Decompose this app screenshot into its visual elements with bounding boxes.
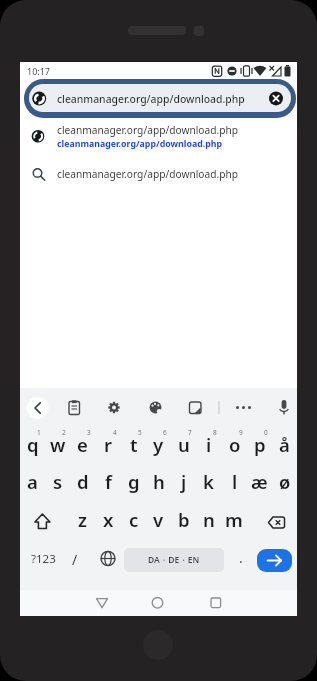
button[interactable]: ?123 — [23, 546, 63, 572]
button[interactable]: r — [96, 431, 121, 457]
button[interactable]: s — [45, 468, 70, 494]
button[interactable] — [271, 395, 297, 421]
staticText: j — [181, 469, 187, 494]
button[interactable] — [90, 592, 114, 616]
staticText: y — [153, 432, 164, 457]
staticText: æ — [251, 469, 268, 494]
button[interactable]: a — [20, 468, 45, 494]
staticText: 0 — [264, 428, 268, 437]
button[interactable]: ø — [272, 468, 297, 494]
button[interactable]: m — [221, 506, 246, 532]
staticText: v — [153, 507, 164, 532]
staticText: ?123 — [31, 551, 56, 567]
button[interactable]: o — [222, 431, 247, 457]
button[interactable] — [182, 395, 208, 421]
button[interactable]: DA・DE・EN — [124, 548, 224, 572]
staticText: n — [203, 507, 215, 532]
staticText: k — [203, 469, 214, 494]
staticText: g — [128, 469, 140, 494]
button[interactable]: b — [171, 506, 196, 532]
staticText: o — [229, 432, 241, 457]
staticText: r — [104, 432, 113, 457]
staticText: DA・DE・EN — [148, 554, 200, 566]
button[interactable]: i — [196, 431, 221, 457]
button[interactable]: e — [70, 431, 95, 457]
button[interactable] — [101, 395, 127, 421]
staticText: . — [239, 548, 243, 567]
button[interactable] — [24, 79, 296, 118]
button[interactable]: n — [196, 506, 221, 532]
staticText: 10:17 — [27, 65, 51, 77]
button[interactable]: . — [232, 544, 250, 570]
button[interactable]: / — [64, 546, 86, 572]
staticText: 5 — [138, 428, 142, 437]
staticText: ø — [279, 469, 291, 494]
staticText: b — [178, 507, 190, 532]
button[interactable] — [25, 395, 51, 421]
button[interactable] — [257, 549, 292, 572]
staticText: w — [50, 432, 66, 457]
staticText: t — [130, 432, 138, 457]
staticText: 8 — [213, 428, 217, 437]
staticText: c — [129, 507, 139, 532]
staticText: a — [27, 469, 38, 494]
button[interactable]: v — [146, 506, 171, 532]
button[interactable]: p — [247, 431, 272, 457]
button[interactable]: q — [20, 431, 45, 457]
staticText: 2 — [62, 428, 66, 437]
staticText: 3 — [87, 428, 91, 437]
button[interactable]: å — [272, 431, 297, 457]
button[interactable] — [20, 160, 297, 186]
button[interactable] — [61, 395, 87, 421]
staticText: 4 — [113, 428, 117, 437]
staticText: cleanmanager.org/app/download.php — [57, 167, 239, 181]
button[interactable]: æ — [247, 468, 272, 494]
staticText: / — [72, 550, 78, 569]
button[interactable]: f — [96, 468, 121, 494]
button[interactable]: x — [96, 506, 121, 532]
button[interactable]: d — [70, 468, 95, 494]
staticText: d — [77, 469, 89, 494]
staticText: h — [153, 469, 165, 494]
staticText: cleanmanager.org/app/download.php — [57, 138, 223, 150]
button[interactable] — [231, 395, 257, 421]
button[interactable]: w — [45, 431, 70, 457]
button[interactable] — [20, 119, 297, 152]
button[interactable]: l — [222, 468, 247, 494]
button[interactable]: t — [121, 431, 146, 457]
staticText: e — [77, 432, 88, 457]
button[interactable]: k — [196, 468, 221, 494]
staticText: 1 — [37, 428, 41, 437]
button[interactable]: y — [146, 431, 171, 457]
button[interactable] — [143, 395, 169, 421]
staticText: x — [103, 507, 114, 532]
button[interactable]: g — [121, 468, 146, 494]
staticText: i — [206, 432, 212, 457]
staticText: 6 — [163, 428, 167, 437]
staticText: cleanmanager.org/app/download.php — [57, 123, 239, 137]
staticText: q — [27, 432, 39, 457]
button[interactable]: h — [146, 468, 171, 494]
staticText: f — [105, 469, 112, 494]
button[interactable]: j — [171, 468, 196, 494]
staticText: u — [178, 432, 190, 457]
button[interactable] — [145, 592, 169, 616]
staticText: m — [225, 507, 243, 532]
button[interactable] — [204, 592, 228, 616]
button[interactable]: c — [121, 506, 146, 532]
staticText: p — [254, 432, 266, 457]
staticText: s — [53, 469, 63, 494]
staticText: 7 — [188, 428, 192, 437]
staticText: 9 — [239, 428, 243, 437]
staticText: cleanmanager.org/app/download.php — [57, 92, 245, 106]
staticText: å — [279, 432, 290, 457]
staticText: z — [78, 507, 87, 532]
button[interactable]: u — [171, 431, 196, 457]
staticText: l — [232, 469, 238, 494]
button[interactable]: z — [70, 506, 95, 532]
